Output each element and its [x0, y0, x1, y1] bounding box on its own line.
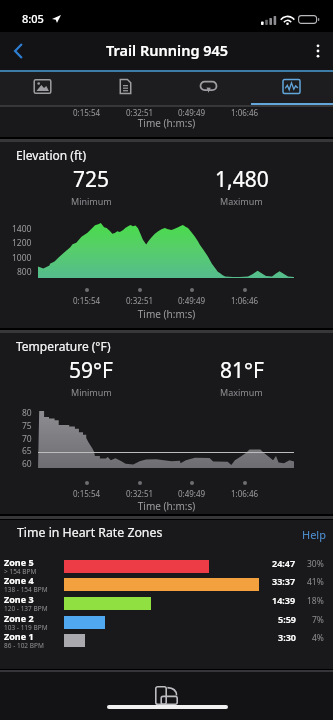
staticText: 1000 [12, 252, 32, 264]
staticText: 0:32:51 [126, 488, 154, 499]
staticText: 86 - 102 BPM [4, 641, 44, 650]
staticText: 33:37 [272, 575, 296, 587]
staticText: 75 [22, 420, 32, 432]
staticText: 80 [22, 407, 32, 419]
staticText: Zone 5 [4, 556, 34, 568]
staticText: 8:05 [22, 11, 44, 26]
staticText: 5:59 [278, 613, 296, 625]
staticText: 1:06:46 [231, 295, 259, 306]
staticText: Maximum [220, 195, 263, 207]
staticText: Trail Running 945 [106, 40, 229, 60]
staticText: 1:06:46 [231, 488, 259, 499]
button[interactable]: Help [296, 523, 332, 546]
button[interactable]: More options [303, 32, 333, 70]
staticText: 1200 [12, 237, 32, 249]
staticText: 18% [307, 595, 324, 607]
staticText: 4% [312, 632, 324, 644]
staticText: Minimum [71, 386, 112, 398]
staticText: 1,480 [215, 165, 269, 194]
staticText: 41% [307, 576, 324, 588]
staticText: Temperature (°F) [16, 338, 111, 354]
staticText: 800 [17, 266, 32, 278]
staticText: Time (h:m:s) [0, 499, 333, 513]
staticText: 1:06:46 [231, 107, 259, 118]
staticText: 14:39 [272, 594, 296, 606]
staticText: > 154 BPM [4, 567, 37, 576]
staticText: 65 [22, 445, 32, 457]
staticText: Zone 1 [4, 630, 34, 642]
button[interactable]: Charts [250, 70, 333, 105]
staticText: Zone 2 [4, 612, 34, 624]
staticText: 7% [312, 614, 324, 626]
staticText: 120 - 137 BPM [4, 604, 48, 613]
staticText: Time in Heart Rate Zones [17, 524, 163, 541]
staticText: 59°F [69, 356, 113, 385]
staticText: 0:49:49 [178, 295, 206, 306]
staticText: 24:47 [272, 557, 296, 569]
staticText: 3:30 [278, 631, 296, 643]
staticText: Zone 4 [4, 574, 34, 586]
staticText: Time (h:m:s) [0, 116, 333, 130]
staticText: 0:15:54 [73, 295, 101, 306]
staticText: 70 [22, 433, 32, 445]
staticText: Maximum [220, 386, 263, 398]
button[interactable]: Rotate screen [151, 682, 182, 708]
button[interactable]: Back [0, 32, 36, 70]
button[interactable]: Map [0, 70, 84, 105]
button[interactable]: Laps [167, 70, 250, 105]
staticText: Zone 3 [4, 593, 34, 605]
staticText: Minimum [71, 195, 112, 207]
staticText: 725 [73, 165, 110, 194]
staticText: 0:32:51 [126, 295, 154, 306]
staticText: 81°F [220, 356, 264, 385]
staticText: Elevation (ft) [16, 147, 87, 163]
button[interactable]: Details [84, 70, 167, 105]
staticText: 0:49:49 [178, 488, 206, 499]
staticText: 0:15:54 [73, 107, 101, 118]
staticText: 0:49:49 [178, 107, 206, 118]
staticText: Time (h:m:s) [0, 307, 333, 321]
staticText: Help [302, 527, 326, 542]
staticText: 103 - 119 BPM [4, 623, 48, 632]
staticText: 0:32:51 [126, 107, 154, 118]
staticText: 30% [307, 558, 324, 570]
staticText: 0:15:54 [73, 488, 101, 499]
staticText: 138 - 154 BPM [4, 585, 48, 594]
staticText: 60 [22, 458, 32, 470]
staticText: 1400 [12, 223, 32, 235]
